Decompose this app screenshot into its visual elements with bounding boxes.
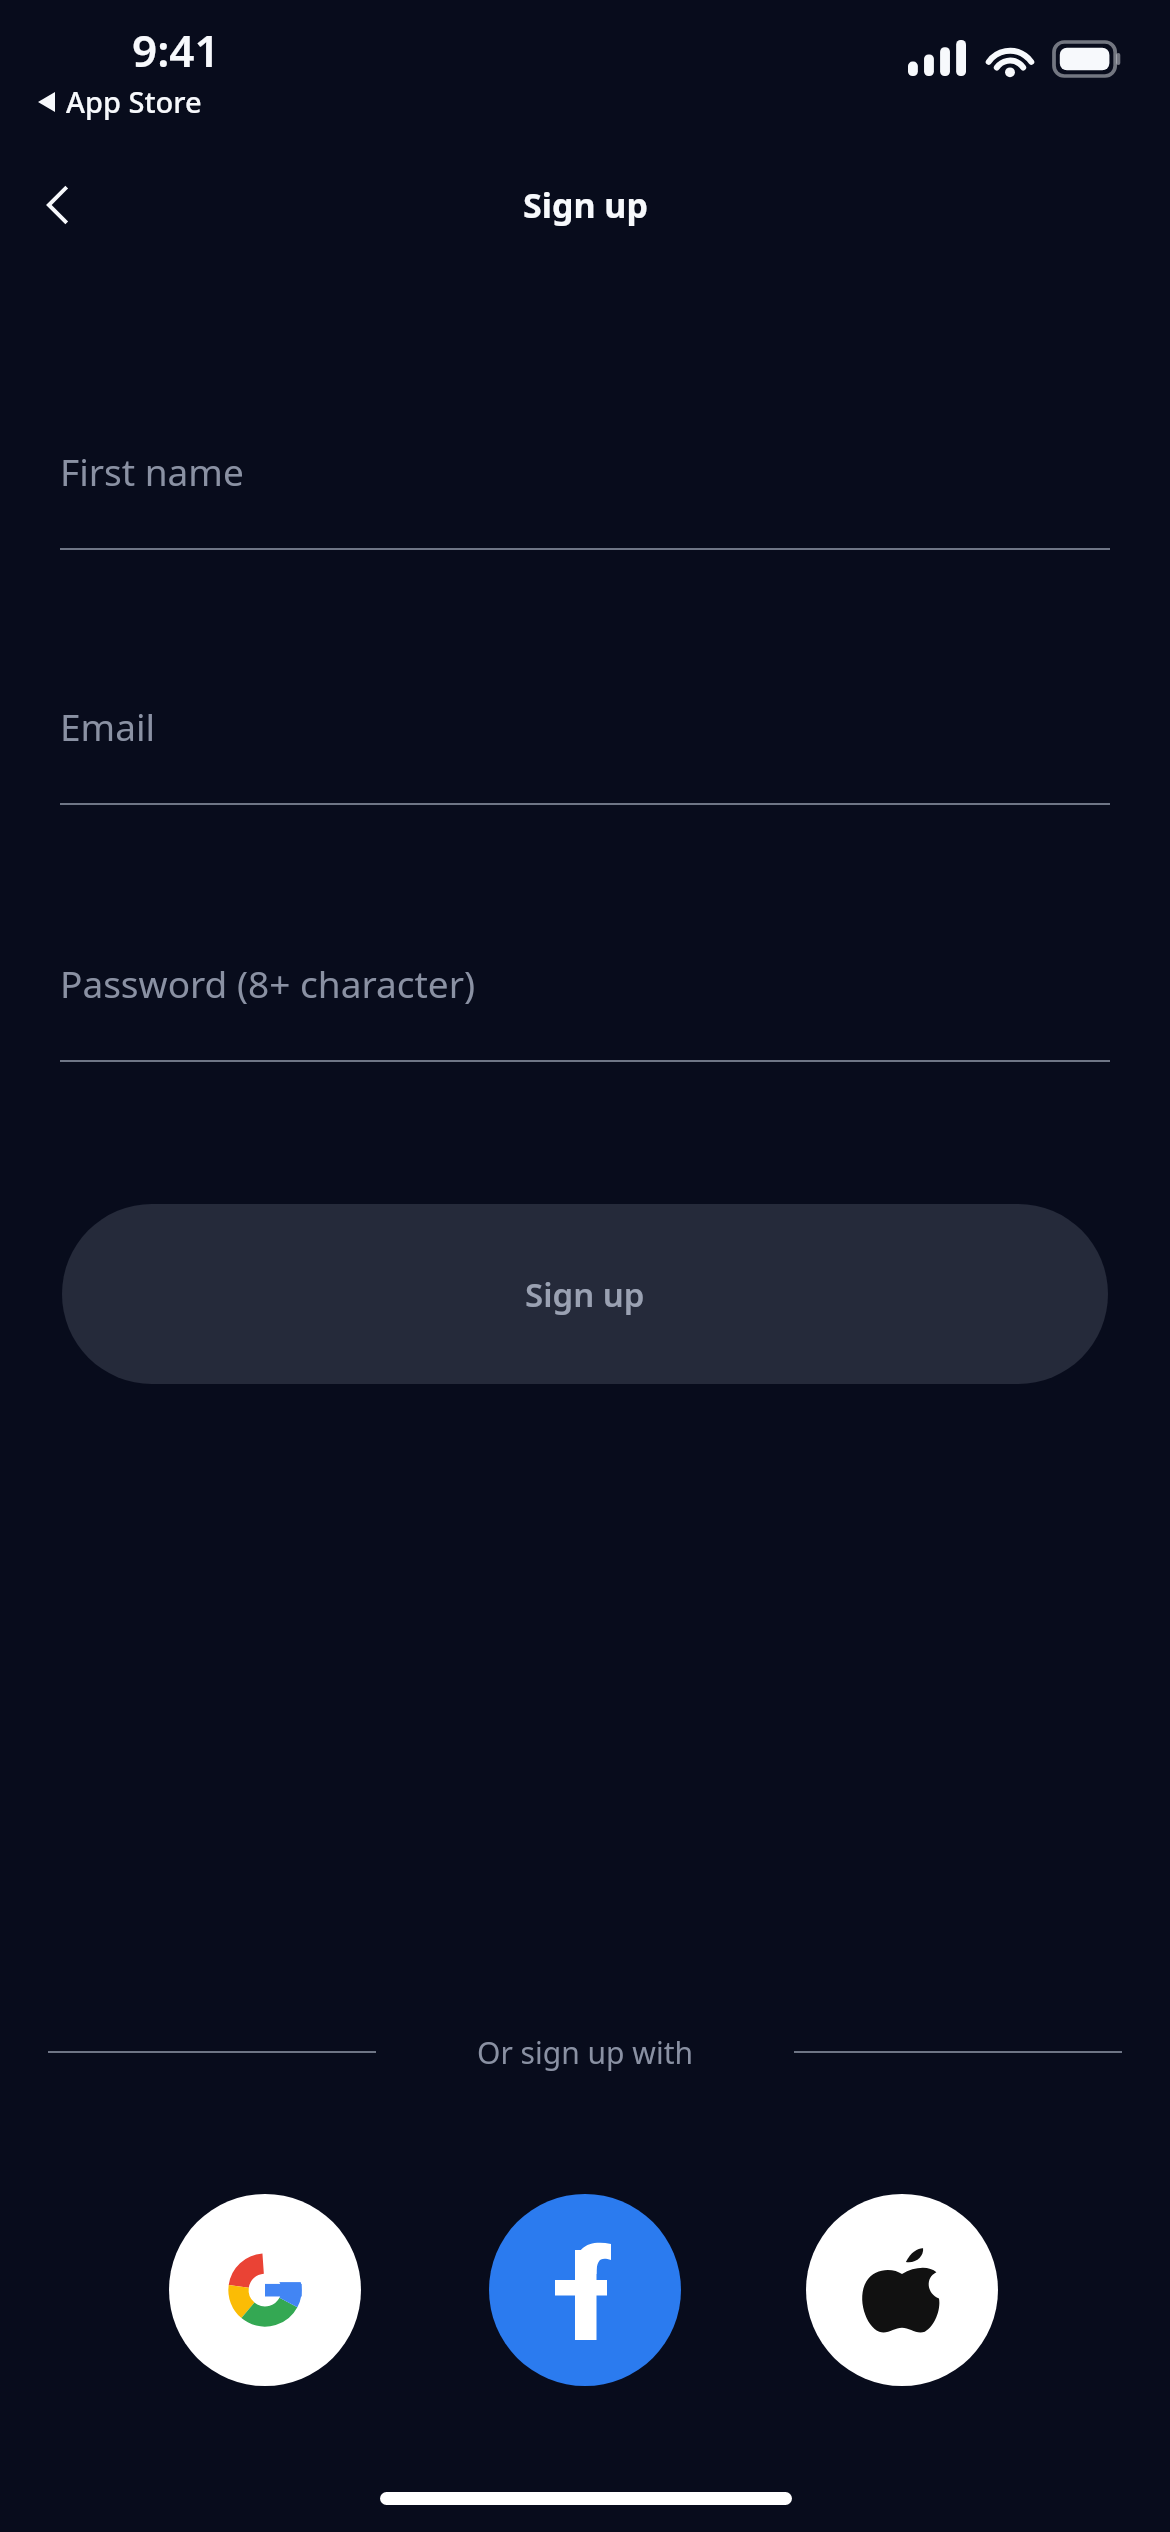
staticText: Sign up [523, 182, 648, 228]
button[interactable]: Back [18, 165, 98, 245]
button[interactable]: Sign up with Apple [806, 2194, 998, 2386]
button[interactable]: Sign up with Google [169, 2194, 361, 2386]
staticText: Email [60, 701, 156, 751]
staticText: Or sign up with [477, 2032, 693, 2073]
button[interactable]: First name [0, 438, 1170, 550]
staticText: Sign up [525, 1272, 645, 1317]
staticText: First name [60, 446, 244, 496]
staticText: App Store [66, 82, 202, 121]
button[interactable]: Email [0, 693, 1170, 805]
button[interactable]: Sign up [62, 1204, 1108, 1384]
button[interactable]: Sign up with Facebook [489, 2194, 681, 2386]
staticText: 9:41 [132, 20, 220, 80]
button[interactable]: Password (8+ character) [0, 950, 1170, 1062]
staticText: Password (8+ character) [60, 958, 476, 1008]
